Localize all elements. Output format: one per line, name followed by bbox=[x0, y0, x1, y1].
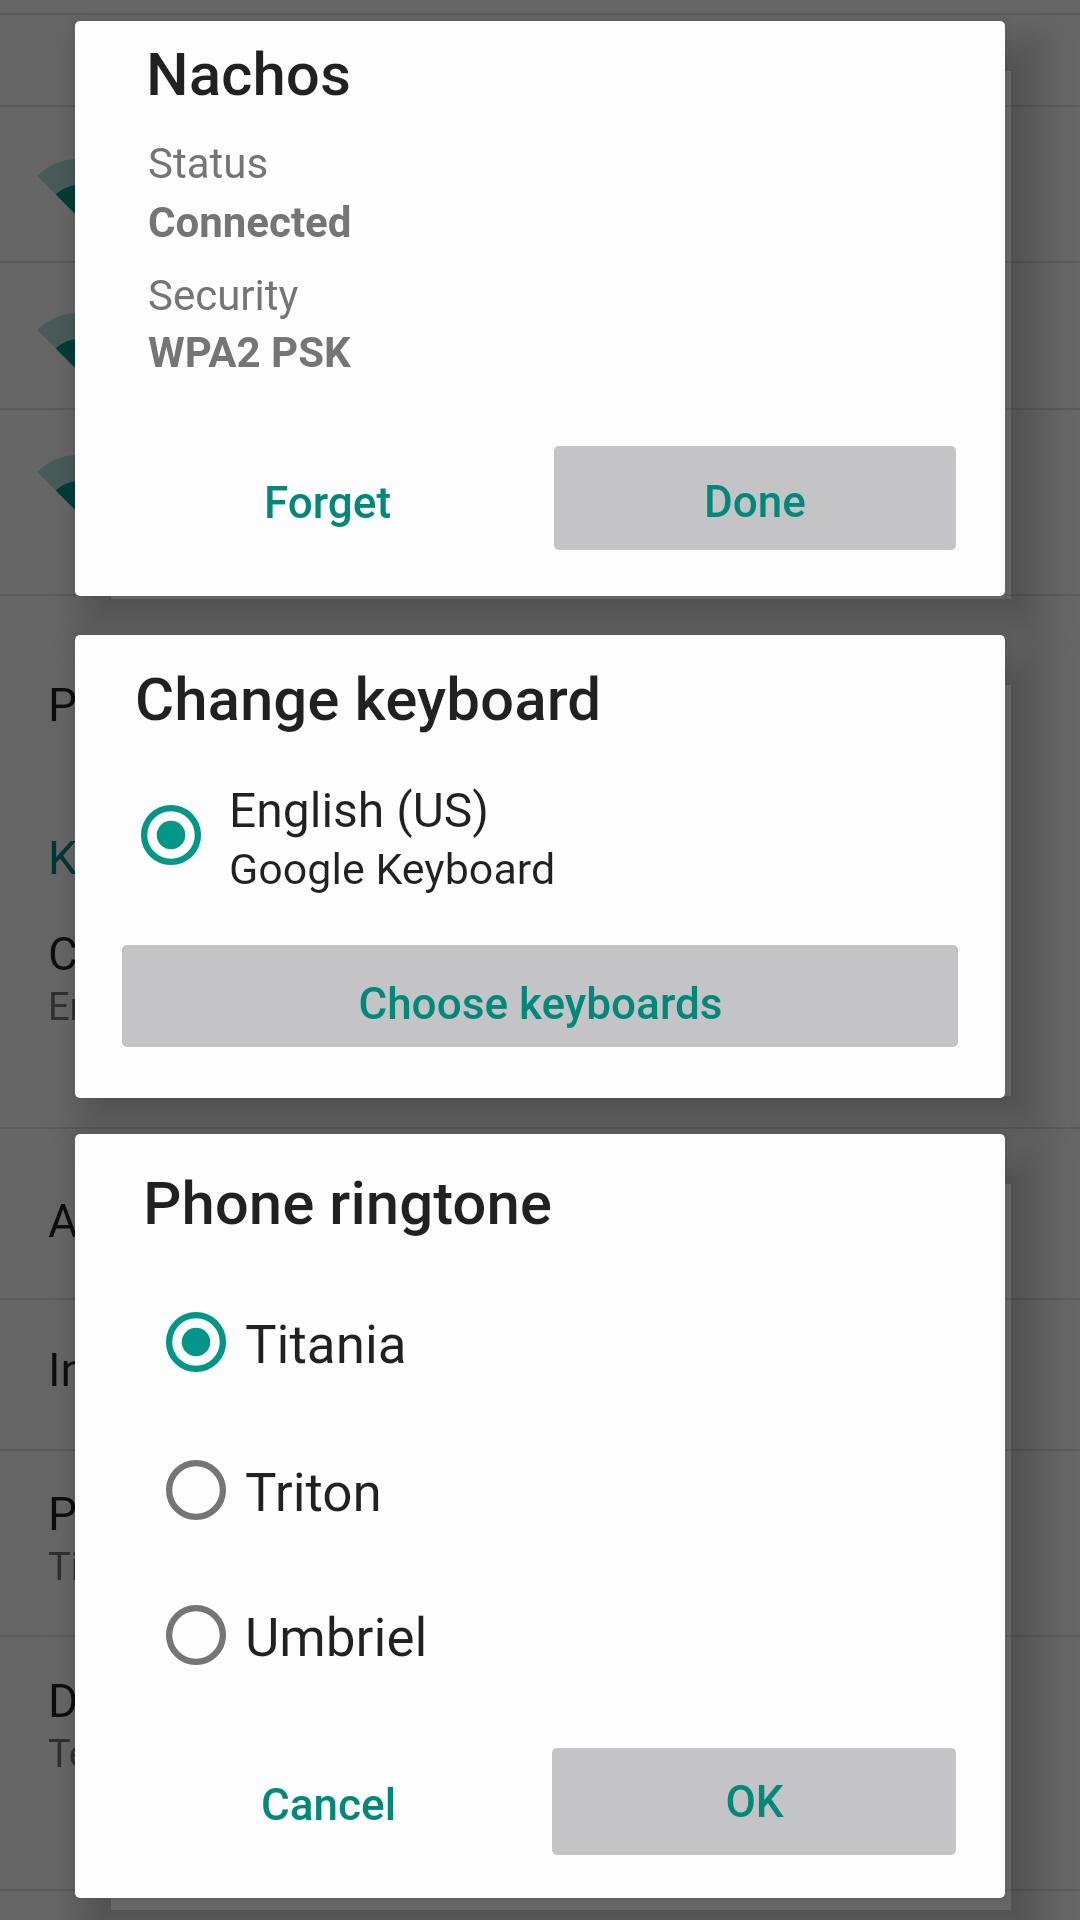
button[interactable]: Current Keyboard bbox=[48, 918, 1080, 1038]
staticText: Input bbox=[48, 1343, 153, 1397]
button[interactable]: English (US) bbox=[75, 780, 1005, 890]
staticText: WPA2 PSK bbox=[148, 328, 351, 377]
staticText: Google Keyboard bbox=[229, 844, 556, 894]
button[interactable]: Choose keyboards bbox=[122, 945, 958, 1047]
staticText: Security bbox=[148, 271, 299, 320]
staticText: Current Keyboard bbox=[48, 927, 403, 981]
button[interactable]: Personal bbox=[48, 645, 1080, 765]
other: Wi-Fi signal strength bbox=[40, 151, 116, 227]
button[interactable]: Forget bbox=[218, 451, 438, 555]
staticText: Default notification bbox=[48, 1674, 437, 1728]
button[interactable]: Cancel bbox=[218, 1753, 438, 1857]
button[interactable]: Wi-Fi signal strength bbox=[0, 265, 1080, 421]
staticText: Accounts bbox=[48, 1194, 242, 1248]
staticText: Cancel bbox=[261, 1779, 396, 1831]
staticText: Choose keyboards bbox=[358, 978, 723, 1030]
button[interactable]: Wi-Fi signal strength bbox=[0, 111, 1080, 267]
staticText: Nachos bbox=[146, 39, 352, 109]
other: Wi-Fi signal strength bbox=[40, 305, 116, 381]
staticText: Burritos bbox=[148, 137, 309, 191]
staticText: Triton bbox=[245, 1462, 382, 1524]
staticText: Enchiladas bbox=[148, 433, 372, 487]
staticText: Secured with WPA2 bbox=[148, 493, 477, 538]
staticText: Secured with WPA2 bbox=[148, 351, 477, 396]
other: Wi-Fi signal strength bbox=[40, 447, 116, 523]
button[interactable]: Done bbox=[554, 446, 956, 550]
staticText: Change keyboard bbox=[135, 664, 602, 734]
staticText: Phone ringtone bbox=[48, 1487, 359, 1541]
staticText: Done bbox=[704, 476, 806, 528]
staticText: Forget bbox=[264, 477, 392, 529]
staticText: Phone ringtone bbox=[143, 1168, 553, 1238]
button[interactable]: Umbriel bbox=[75, 1586, 1005, 1684]
button[interactable]: Default notification bbox=[48, 1665, 1080, 1785]
button[interactable]: Titania bbox=[75, 1293, 1005, 1391]
staticText: Titania bbox=[245, 1314, 407, 1376]
staticText: Status bbox=[148, 139, 269, 188]
staticText: Titania bbox=[48, 1545, 164, 1590]
button[interactable]: Keyboard & input bbox=[48, 798, 1080, 918]
button[interactable]: OK bbox=[552, 1748, 956, 1855]
staticText: Connected bbox=[148, 198, 352, 247]
button[interactable]: Wi-Fi signal strength bbox=[0, 407, 1080, 563]
staticText: Secured with WPA2 bbox=[148, 197, 477, 242]
staticText: Tethys bbox=[48, 1732, 160, 1777]
button[interactable]: Triton bbox=[75, 1441, 1005, 1539]
staticText: Tacos bbox=[148, 291, 272, 345]
staticText: English (US) bbox=[229, 782, 489, 838]
button[interactable]: Accounts bbox=[48, 1161, 1080, 1281]
staticText: Umbriel bbox=[245, 1607, 428, 1669]
staticText: OK bbox=[725, 1776, 784, 1828]
staticText: Keyboard & input bbox=[48, 831, 395, 885]
staticText: Personal bbox=[48, 678, 229, 732]
button[interactable]: Input bbox=[48, 1310, 1080, 1430]
button[interactable]: Phone ringtone bbox=[48, 1478, 1080, 1598]
staticText: English (US) bbox=[48, 985, 254, 1030]
